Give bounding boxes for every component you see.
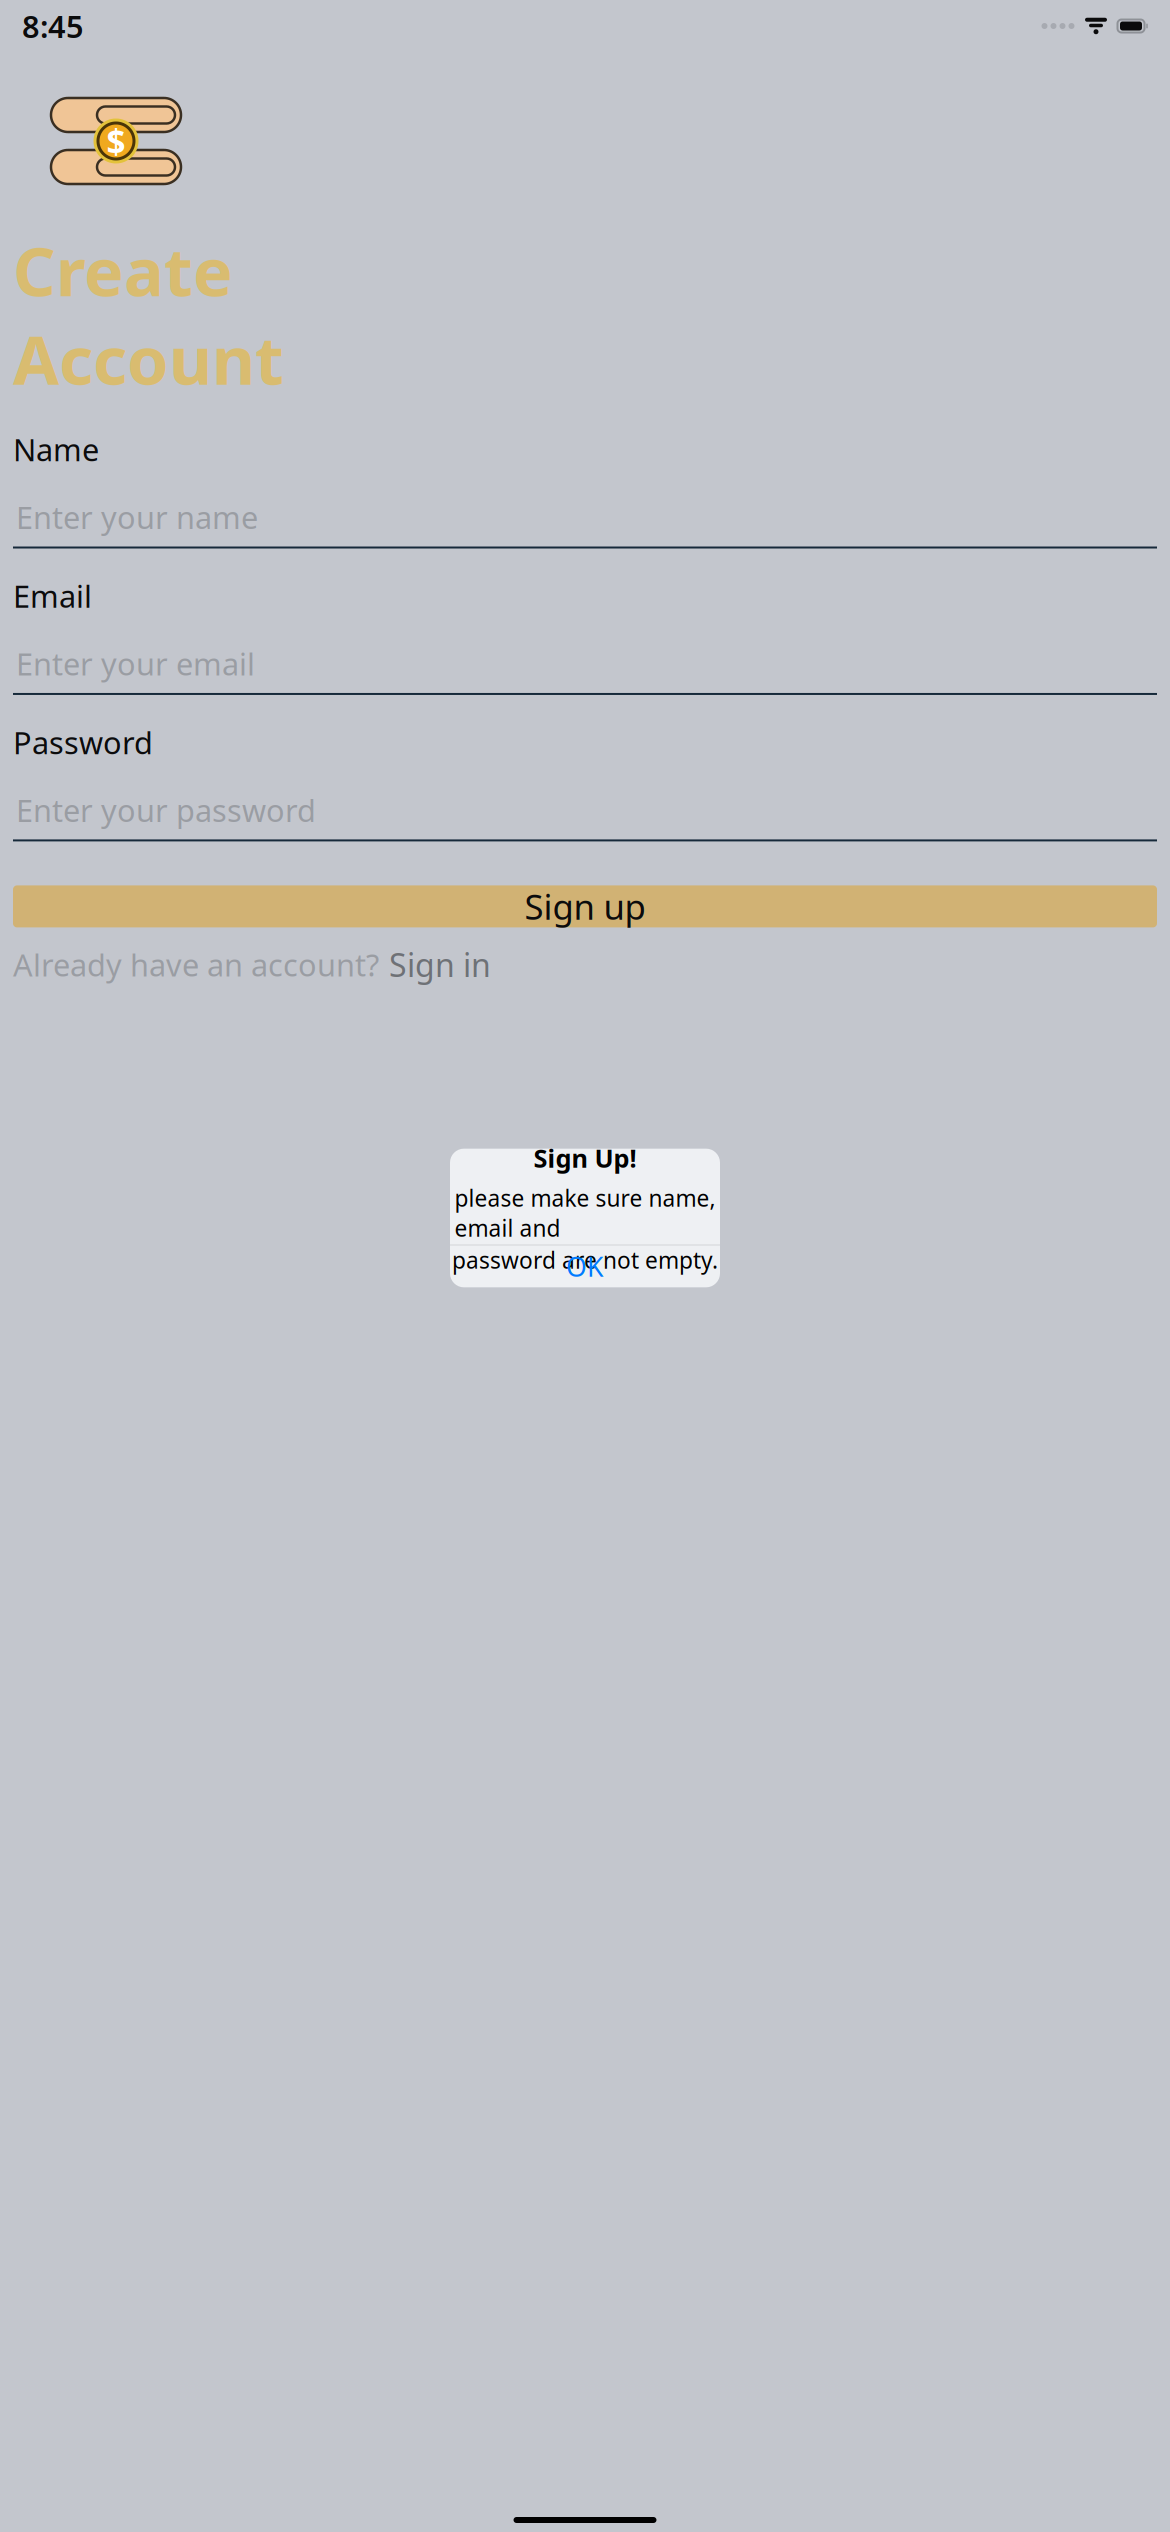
staticText: password are not empty.: [452, 1245, 718, 1275]
staticText: OK: [566, 1249, 604, 1284]
staticText: Sign up: [524, 883, 645, 929]
staticText: Email: [13, 575, 92, 616]
staticText: Name: [13, 429, 99, 470]
staticText: Already have an account?: [13, 944, 379, 985]
button[interactable]: Sign in: [379, 943, 491, 986]
staticText: 8:45: [22, 6, 84, 46]
staticText: please make sure name, email and: [454, 1183, 715, 1243]
staticText: Password: [13, 722, 153, 763]
staticText: Enter your email: [16, 643, 255, 684]
staticText: Account: [13, 314, 284, 403]
button[interactable]: OK: [450, 1245, 720, 1287]
button[interactable]: Sign up: [13, 885, 1157, 927]
staticText: Sign Up!: [533, 1141, 636, 1175]
staticText: Create: [13, 226, 233, 314]
staticText: Enter your password: [16, 790, 316, 830]
staticText: Sign in: [389, 943, 491, 986]
staticText: Enter your name: [16, 497, 258, 537]
staticText: $: [106, 119, 125, 163]
